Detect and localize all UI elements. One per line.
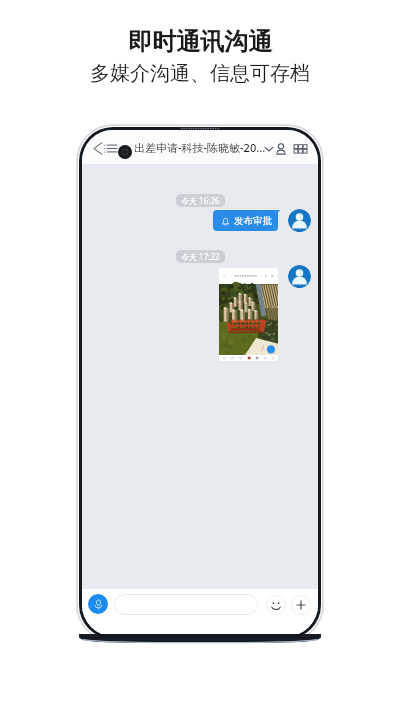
- staticText: 发布审批: [234, 215, 272, 227]
- button[interactable]: Menu: [104, 143, 118, 154]
- button[interactable]: Apps: [292, 141, 308, 157]
- staticText: 今天 17:22: [181, 251, 220, 262]
- staticText: 今天 16:26: [181, 195, 220, 206]
- button[interactable]: Voice message: [88, 594, 108, 614]
- button[interactable]: Back: [91, 141, 105, 155]
- button[interactable]: Emoji: [265, 594, 286, 615]
- button[interactable]: Expand: [263, 143, 274, 154]
- staticText: 多媒介沟通、信息可存档: [0, 61, 400, 86]
- button[interactable]: 发布审批: [213, 210, 278, 231]
- button[interactable]: Members: [273, 141, 288, 156]
- staticText: 出差申请-科技-陈晓敏-20...: [134, 140, 266, 155]
- button[interactable]: More: [290, 594, 311, 615]
- button[interactable]: [114, 594, 258, 615]
- staticText: 即时通讯沟通: [0, 27, 400, 57]
